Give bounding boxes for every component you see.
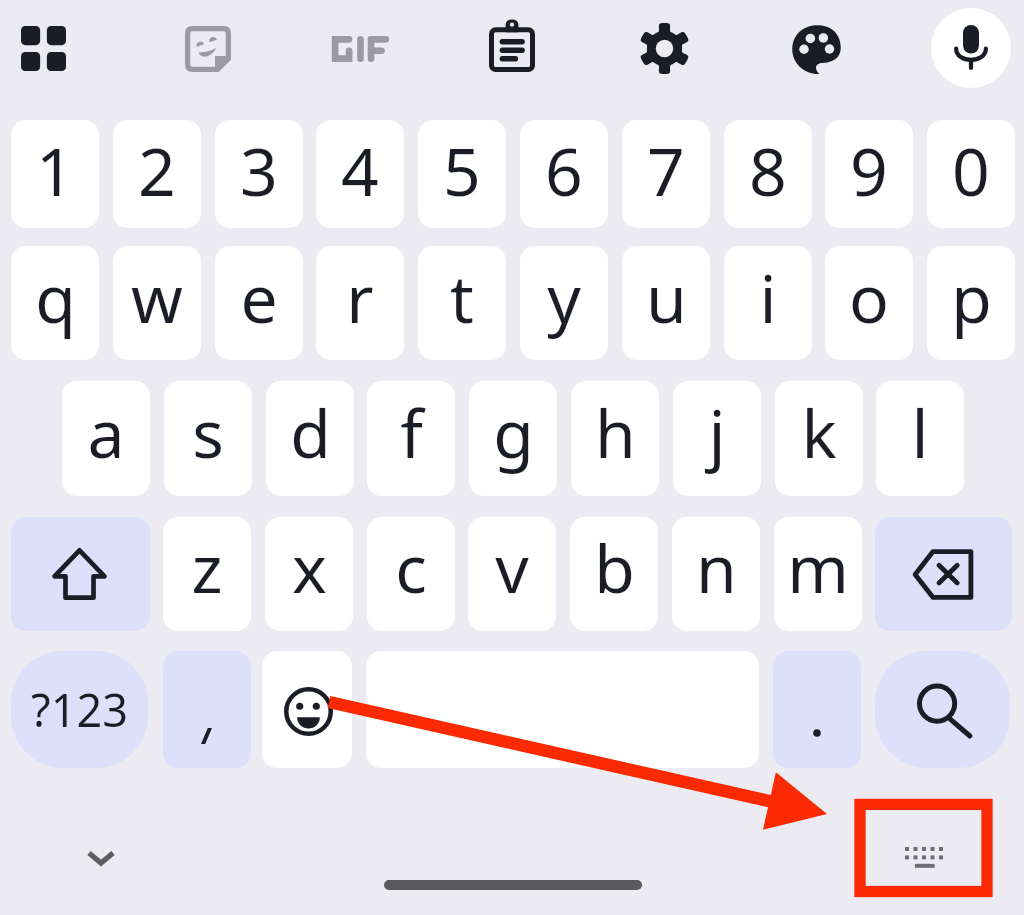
button[interactable]: Themes bbox=[792, 25, 841, 74]
button[interactable]: 4 bbox=[316, 120, 404, 228]
staticText: s bbox=[192, 387, 224, 477]
staticText: b bbox=[594, 522, 635, 612]
staticText: j bbox=[708, 387, 726, 477]
button[interactable]: Shift bbox=[11, 517, 150, 631]
staticText: 9 bbox=[850, 125, 888, 215]
button[interactable]: p bbox=[927, 246, 1015, 360]
staticText: m bbox=[787, 522, 849, 612]
staticText: o bbox=[849, 252, 889, 342]
button[interactable]: o bbox=[825, 246, 913, 360]
button[interactable]: ?123 bbox=[11, 651, 148, 768]
staticText: z bbox=[191, 522, 223, 612]
button[interactable] bbox=[773, 651, 861, 768]
button[interactable]: 2 bbox=[113, 120, 201, 228]
button[interactable]: Space bbox=[366, 651, 759, 768]
button[interactable]: 7 bbox=[622, 120, 710, 228]
button[interactable]: f bbox=[367, 381, 455, 496]
staticText: f bbox=[400, 387, 423, 477]
button[interactable]: a bbox=[62, 381, 150, 496]
staticText: v bbox=[495, 522, 529, 612]
button[interactable]: Backspace bbox=[875, 517, 1012, 631]
button[interactable]: g bbox=[469, 381, 557, 496]
button[interactable]: 8 bbox=[724, 120, 812, 228]
staticText: y bbox=[547, 252, 581, 342]
staticText: 5 bbox=[443, 125, 481, 215]
staticText: u bbox=[646, 252, 687, 342]
staticText: g bbox=[493, 387, 534, 477]
button[interactable]: m bbox=[774, 517, 862, 631]
button[interactable]: z bbox=[163, 517, 251, 631]
staticText: ?123 bbox=[31, 679, 128, 740]
staticText: 1 bbox=[36, 125, 74, 215]
button[interactable]: Search bbox=[875, 651, 1010, 768]
button[interactable]: j bbox=[673, 381, 761, 496]
button[interactable]: t bbox=[418, 246, 506, 360]
button[interactable]: Clipboard bbox=[489, 22, 535, 72]
staticText: 0 bbox=[952, 125, 990, 215]
button[interactable]: k bbox=[775, 381, 863, 496]
staticText: 7 bbox=[647, 125, 685, 215]
staticText: p bbox=[951, 252, 992, 342]
staticText: d bbox=[290, 387, 331, 477]
button[interactable]: Emoji bbox=[262, 651, 352, 768]
button[interactable]: Voice input bbox=[931, 8, 1011, 88]
staticText: i bbox=[759, 252, 777, 342]
button[interactable]: Hide keyboard bbox=[79, 828, 123, 872]
staticText: x bbox=[292, 522, 327, 612]
button[interactable]: y bbox=[520, 246, 608, 360]
button[interactable]: n bbox=[672, 517, 760, 631]
button[interactable]: 9 bbox=[825, 120, 913, 228]
staticText: t bbox=[450, 252, 474, 342]
staticText: l bbox=[911, 387, 929, 477]
button[interactable]: b bbox=[570, 517, 658, 631]
button[interactable]: w bbox=[113, 246, 201, 360]
staticText: 2 bbox=[138, 125, 176, 215]
staticText: n bbox=[696, 522, 737, 612]
staticText: a bbox=[87, 387, 125, 477]
button[interactable]: r bbox=[316, 246, 404, 360]
button[interactable]: x bbox=[265, 517, 353, 631]
button[interactable]: v bbox=[468, 517, 556, 631]
staticText: e bbox=[240, 252, 278, 342]
button[interactable]: Settings bbox=[641, 23, 688, 74]
button[interactable]: u bbox=[622, 246, 710, 360]
staticText: 3 bbox=[240, 125, 278, 215]
button[interactable]: i bbox=[724, 246, 812, 360]
staticText: h bbox=[595, 387, 636, 477]
button[interactable]: d bbox=[266, 381, 354, 496]
button[interactable]: q bbox=[11, 246, 99, 360]
button[interactable]: 0 bbox=[927, 120, 1015, 228]
button[interactable]: e bbox=[215, 246, 303, 360]
button[interactable]: l bbox=[876, 381, 964, 496]
staticText: 8 bbox=[749, 125, 787, 215]
button[interactable]: h bbox=[571, 381, 659, 496]
button[interactable] bbox=[163, 651, 251, 768]
staticText: c bbox=[395, 522, 427, 612]
button[interactable]: 1 bbox=[11, 120, 99, 228]
button[interactable]: Stickers bbox=[185, 26, 231, 72]
staticText: q bbox=[35, 252, 76, 342]
button[interactable]: GIF bbox=[332, 36, 389, 62]
staticText: r bbox=[346, 252, 374, 342]
button[interactable]: c bbox=[367, 517, 455, 631]
button[interactable]: 6 bbox=[520, 120, 608, 228]
staticText: 6 bbox=[545, 125, 583, 215]
button[interactable]: Toolbar bbox=[21, 26, 66, 71]
button[interactable]: s bbox=[164, 381, 252, 496]
button[interactable]: 5 bbox=[418, 120, 506, 228]
staticText: w bbox=[131, 252, 183, 342]
staticText: k bbox=[801, 387, 837, 477]
staticText: 4 bbox=[341, 125, 379, 215]
button[interactable]: 3 bbox=[215, 120, 303, 228]
